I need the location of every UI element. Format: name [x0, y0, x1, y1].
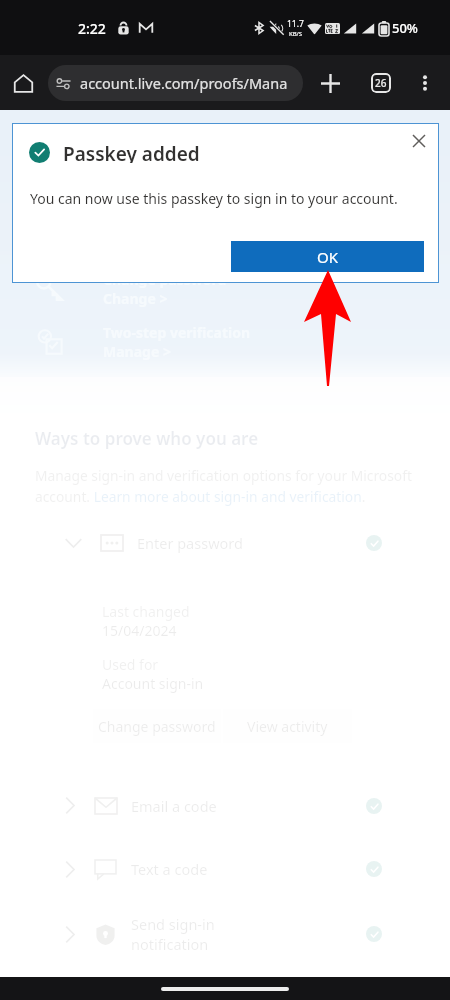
- staticText: Two-step verification: [103, 323, 251, 342]
- staticText: Passkey added: [63, 141, 200, 163]
- staticText: View activity: [247, 717, 328, 736]
- staticText: Used for: [102, 655, 159, 674]
- button[interactable]: Send sign-in: [42, 903, 408, 965]
- staticText: Ways to prove who you are: [35, 427, 259, 450]
- button[interactable]: account.live.com/proofs/Mana: [48, 65, 303, 101]
- staticText: OK: [317, 247, 339, 267]
- staticText: Last changed: [102, 602, 190, 621]
- staticText: Manage >: [103, 342, 171, 361]
- button[interactable]: Change password: [93, 709, 221, 743]
- button[interactable]: More options: [405, 63, 445, 103]
- button[interactable]: New tab: [310, 63, 350, 103]
- staticText: 2:22: [78, 19, 106, 38]
- button[interactable]: Close: [407, 129, 431, 153]
- staticText: Change password: [103, 270, 227, 289]
- staticText: Enter password: [137, 533, 243, 553]
- staticText: KB/S: [289, 30, 303, 38]
- button[interactable]: View activity: [223, 709, 352, 743]
- staticText: Send sign-in: [131, 914, 215, 934]
- staticText: Email a code: [131, 796, 217, 816]
- staticText: 15/04/2024: [102, 621, 177, 640]
- staticText: notification: [131, 934, 209, 954]
- staticText: 26: [375, 76, 387, 90]
- staticText: account.live.com/proofs/Mana: [80, 73, 288, 93]
- staticText: 50%: [392, 19, 418, 37]
- staticText: Account sign-in: [102, 674, 204, 693]
- staticText: Text a code: [131, 859, 208, 879]
- staticText: Change password: [98, 717, 216, 736]
- staticText: 11.7: [287, 18, 304, 30]
- button[interactable]: Home: [6, 66, 40, 100]
- button[interactable]: Tabs: [361, 63, 401, 103]
- button[interactable]: OK: [231, 241, 424, 272]
- staticText: Change >: [103, 289, 168, 308]
- staticText: Manage sign-in and verification options …: [35, 466, 434, 506]
- staticText: You can now use this passkey to sign in …: [30, 189, 398, 208]
- button[interactable]: Change password: [34, 270, 227, 308]
